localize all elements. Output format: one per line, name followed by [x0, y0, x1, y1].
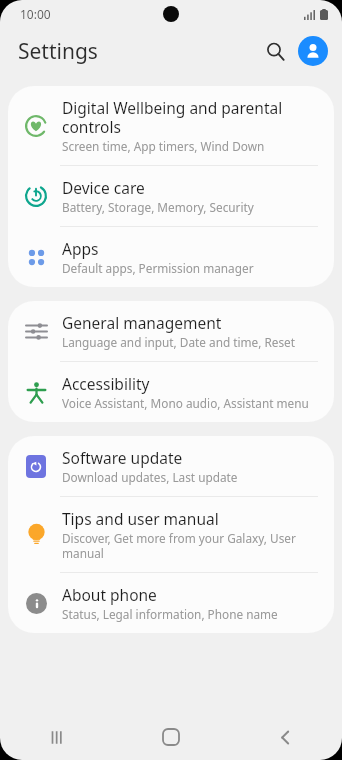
button[interactable]: About phone: [8, 573, 334, 633]
button[interactable]: Accessibility: [8, 362, 334, 422]
button[interactable]: Digital Wellbeing and parental controls: [8, 86, 334, 165]
button[interactable]: Apps: [8, 227, 334, 287]
staticText: Discover, Get more from your Galaxy, Use…: [62, 530, 316, 561]
button[interactable]: Home: [114, 714, 228, 760]
staticText: Settings: [18, 37, 98, 66]
staticText: Apps: [62, 238, 99, 259]
staticText: Default apps, Permission manager: [62, 260, 254, 276]
staticText: 10:00: [20, 6, 51, 22]
button[interactable]: Account: [298, 36, 328, 66]
staticText: Software update: [62, 447, 183, 468]
staticText: Download updates, Last update: [62, 469, 238, 485]
button[interactable]: Software update: [8, 436, 334, 496]
staticText: Screen time, App timers, Wind Down: [62, 138, 265, 154]
staticText: Battery, Storage, Memory, Security: [62, 199, 254, 215]
staticText: Tips and user manual: [62, 508, 219, 529]
staticText: Digital Wellbeing and parental controls: [62, 97, 316, 137]
button[interactable]: Recent apps: [0, 714, 114, 760]
staticText: Device care: [62, 177, 145, 198]
button[interactable]: Device care: [8, 166, 334, 226]
staticText: About phone: [62, 584, 157, 605]
staticText: Status, Legal information, Phone name: [62, 606, 278, 622]
button[interactable]: General management: [8, 301, 334, 361]
button[interactable]: Tips and user manual: [8, 497, 334, 572]
staticText: General management: [62, 312, 222, 333]
button[interactable]: Back: [228, 714, 342, 760]
staticText: Language and input, Date and time, Reset: [62, 334, 296, 350]
button[interactable]: Search: [258, 34, 292, 68]
staticText: Accessibility: [62, 373, 150, 394]
staticText: Voice Assistant, Mono audio, Assistant m…: [62, 395, 309, 411]
